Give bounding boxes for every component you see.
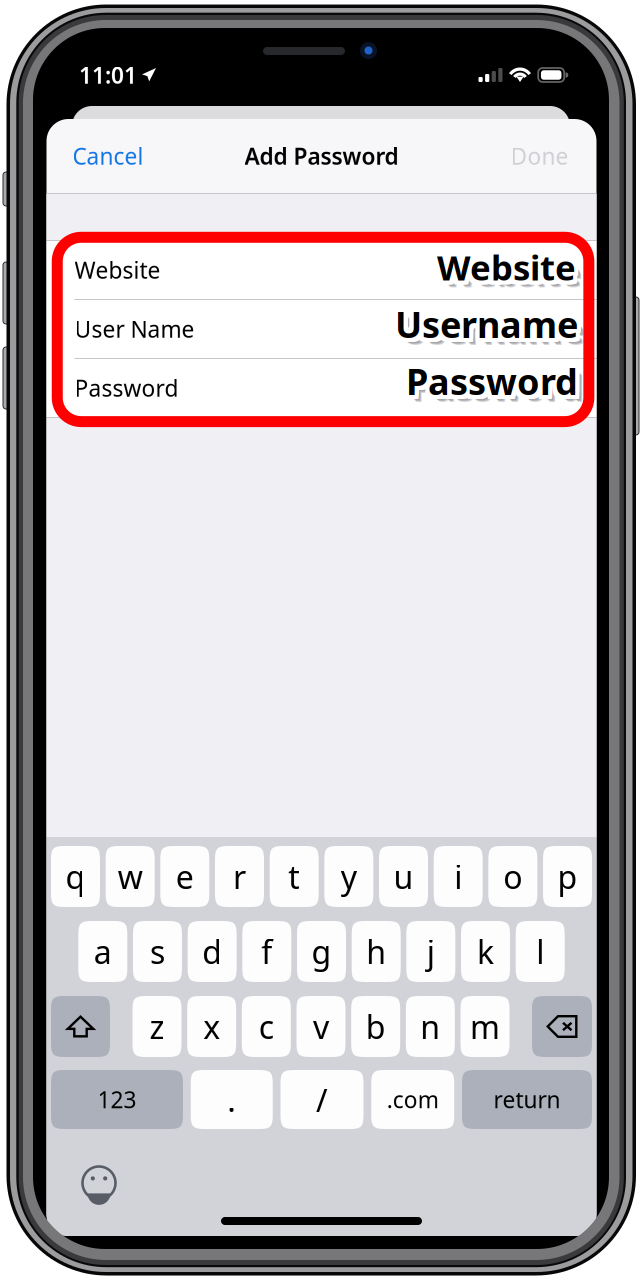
staticText: Website (74, 255, 160, 285)
button[interactable]: .com (371, 1070, 454, 1129)
staticText: Website (435, 244, 574, 290)
staticText: 123 (97, 1084, 136, 1114)
button[interactable]: b (351, 996, 400, 1057)
staticText: Website (444, 251, 583, 297)
staticText: a (94, 930, 112, 973)
staticText: Password (404, 357, 576, 405)
staticText: Password (411, 362, 583, 410)
staticText: Website (433, 244, 572, 290)
staticText: j (427, 930, 435, 973)
button[interactable]: j (406, 921, 455, 982)
button[interactable]: u (379, 846, 428, 907)
staticText: 11:01 (79, 60, 137, 90)
button[interactable]: e (160, 846, 209, 907)
staticText: Username (395, 298, 578, 345)
button[interactable]: Delete (532, 996, 592, 1057)
staticText: Website (437, 246, 576, 292)
staticText: Password (406, 357, 578, 405)
staticText: Username (395, 302, 578, 350)
button[interactable]: a (78, 921, 127, 982)
staticText: . (227, 1078, 236, 1121)
staticText: Password (404, 355, 576, 402)
button[interactable]: x (187, 996, 236, 1057)
staticText: Username (399, 304, 582, 352)
button[interactable]: User Name (46, 300, 596, 358)
staticText: Website (443, 250, 582, 296)
button[interactable]: n (406, 996, 455, 1057)
staticText: Password (404, 353, 576, 401)
staticText: Password (402, 357, 574, 405)
button[interactable]: o (488, 846, 537, 907)
staticText: Website (441, 248, 580, 294)
staticText: Website (433, 240, 572, 286)
button[interactable]: f (242, 921, 291, 982)
button[interactable]: Emoji keyboard (78, 1162, 120, 1204)
button[interactable]: i (434, 846, 483, 907)
staticText: Username (395, 300, 578, 348)
staticText: Username (395, 296, 578, 344)
staticText: Website (442, 249, 581, 295)
staticText: Username (393, 302, 576, 350)
button[interactable]: / (280, 1070, 363, 1129)
staticText: Website (435, 242, 574, 288)
button[interactable]: k (461, 921, 510, 982)
button[interactable]: Cancel (46, 123, 159, 189)
staticText: Username (391, 302, 574, 350)
button[interactable]: q (51, 846, 100, 907)
staticText: y (341, 855, 357, 898)
staticText: Password (410, 353, 582, 401)
staticText: Username (402, 307, 585, 355)
staticText: Password (408, 357, 580, 405)
button[interactable]: s (133, 921, 182, 982)
staticText: Username (399, 302, 582, 350)
staticText: q (65, 855, 85, 898)
staticText: Password (406, 357, 578, 405)
button[interactable]: . (191, 1070, 273, 1129)
staticText: Password (402, 353, 574, 401)
staticText: w (118, 855, 143, 898)
staticText: Username (395, 304, 578, 352)
staticText: g (311, 930, 331, 973)
staticText: Website (435, 248, 574, 294)
staticText: Username (391, 296, 574, 344)
staticText: Username (397, 298, 580, 345)
button[interactable]: y (324, 846, 373, 907)
button[interactable]: c (242, 996, 291, 1057)
button[interactable]: Shift (51, 996, 110, 1057)
staticText: Website (433, 248, 572, 294)
button[interactable]: m (460, 996, 509, 1057)
button[interactable]: 123 (51, 1070, 183, 1129)
button[interactable]: g (297, 921, 346, 982)
button[interactable]: return (462, 1070, 592, 1129)
button[interactable]: z (132, 996, 181, 1057)
button[interactable]: Password (46, 359, 596, 417)
staticText: Username (393, 300, 576, 348)
staticText: d (202, 930, 222, 973)
staticText: Password (410, 361, 582, 409)
staticText: b (366, 1005, 386, 1048)
staticText: r (233, 855, 246, 898)
staticText: Password (402, 355, 574, 402)
button[interactable]: Website (46, 241, 596, 299)
button[interactable]: l (516, 921, 565, 982)
staticText: Password (406, 359, 578, 407)
button[interactable]: Done (494, 123, 596, 189)
button[interactable]: w (106, 846, 155, 907)
button[interactable]: h (352, 921, 401, 982)
staticText: x (203, 1005, 220, 1048)
button[interactable]: t (270, 846, 319, 907)
button[interactable]: d (188, 921, 237, 982)
button[interactable]: r (215, 846, 264, 907)
button[interactable]: v (296, 996, 345, 1057)
staticText: Website (437, 242, 576, 288)
staticText: Website (439, 244, 578, 290)
staticText: Website (437, 248, 576, 294)
staticText: Username (397, 304, 580, 352)
staticText: Password (406, 355, 578, 402)
staticText: Done (510, 141, 568, 171)
staticText: Website (441, 242, 580, 288)
staticText: Password (412, 363, 584, 411)
staticText: Username (397, 300, 580, 348)
staticText: Password (408, 353, 580, 401)
button[interactable]: p (543, 846, 592, 907)
